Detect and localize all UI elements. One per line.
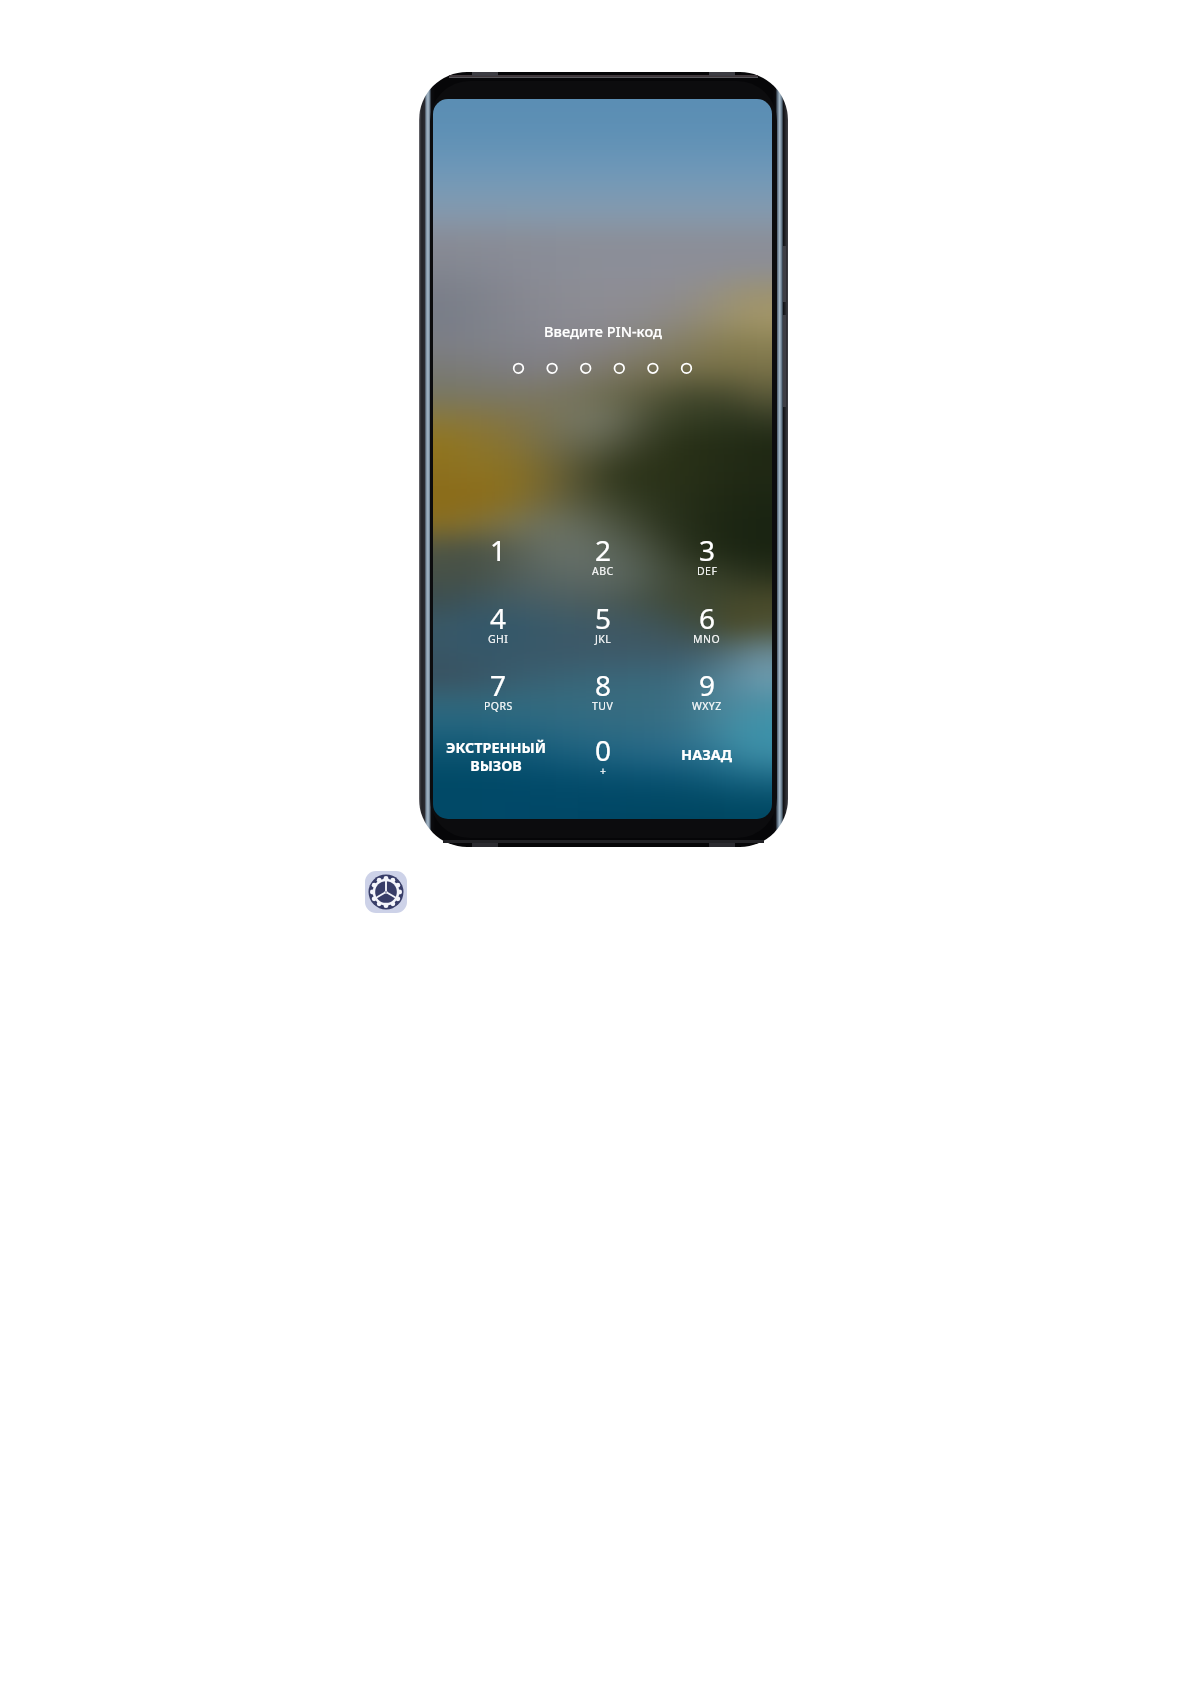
staticText: 9 [699,666,716,704]
button[interactable]: 9 [659,654,755,716]
button[interactable]: 3 [659,519,755,581]
staticText: 8 [595,666,612,704]
staticText: 1 [490,531,507,569]
button[interactable]: Введите PIN-код [503,318,703,344]
button[interactable]: 5 [555,587,651,649]
staticText: DEF [697,564,718,578]
staticText: НАЗАД [681,744,733,764]
staticText: ABC [592,564,614,578]
button[interactable]: Settings [365,871,407,913]
button[interactable]: 2 [555,519,651,581]
button[interactable]: 0 [555,719,651,781]
staticText: Введите PIN-код [544,321,662,341]
button[interactable]: 4 [450,587,546,649]
button[interactable]: ЭКСТРЕННЫЙ [440,716,556,784]
staticText: GHI [488,632,509,646]
staticText: 0 [595,731,612,769]
staticText: TUV [592,699,614,713]
staticText: + [600,764,607,778]
button[interactable]: 1 [450,519,546,581]
staticText: JKL [595,632,612,646]
staticText: 4 [490,599,507,637]
staticText: 2 [595,531,612,569]
staticText: WXYZ [692,699,722,713]
button[interactable]: НАЗАД [657,731,757,777]
staticText: 3 [699,531,716,569]
button[interactable]: 7 [450,654,546,716]
button[interactable]: 8 [555,654,651,716]
button[interactable]: 6 [659,587,755,649]
staticText: ЭКСТРЕННЫЙ [446,738,546,757]
staticText: MNO [693,632,721,646]
staticText: 7 [490,666,507,704]
staticText: 5 [595,599,612,637]
staticText: ВЫЗОВ [470,756,522,775]
staticText: 6 [699,599,716,637]
staticText: PQRS [484,699,513,713]
